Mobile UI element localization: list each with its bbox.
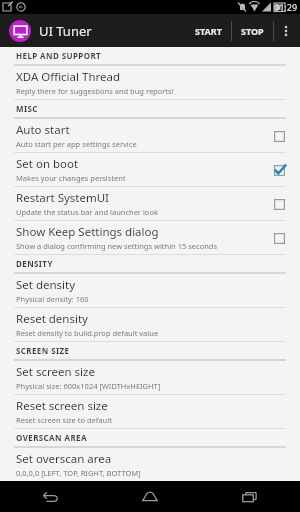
button[interactable]: STOP (232, 14, 273, 47)
button[interactable]: Unchecked (268, 193, 290, 215)
staticText: HELP AND SUPPORT (16, 50, 102, 61)
staticText: Reset density to build.prop default valu… (16, 328, 159, 338)
staticText: Set on boot (16, 156, 79, 172)
staticText: Set overscan area (16, 451, 112, 467)
staticText: XDA Official Thread (16, 69, 121, 85)
staticText: OVERSCAN AREA (16, 432, 87, 443)
staticText: 01:29 (274, 1, 298, 13)
button[interactable]: Show Keep Settings dialog (0, 221, 300, 254)
button[interactable]: START (186, 14, 231, 47)
button[interactable]: Auto start (0, 119, 300, 152)
button[interactable]: Recent apps (200, 481, 300, 512)
staticText: Auto start (16, 122, 70, 138)
staticText: STOP (241, 25, 264, 37)
staticText: START (195, 25, 222, 37)
staticText: Auto start per app settings service (16, 139, 137, 149)
button[interactable]: More options (274, 14, 298, 47)
button[interactable]: Reset screen size (0, 395, 300, 428)
staticText: Physical size: 600x1024 [WIDTHxHEIGHT] (16, 381, 161, 391)
button[interactable]: Set density (0, 274, 300, 307)
button[interactable]: Set overscan area (0, 448, 300, 481)
staticText: Reply there for suggestions and bug repo… (16, 86, 174, 96)
staticText: Restart SystemUI (16, 190, 110, 206)
staticText: Show Keep Settings dialog (16, 224, 159, 240)
button[interactable]: Checked (268, 159, 290, 181)
staticText: DENSITY (16, 258, 53, 269)
staticText: MISC (16, 103, 38, 114)
button[interactable]: Set screen size (0, 361, 300, 394)
staticText: Reset screen size to default (16, 415, 112, 425)
staticText: 0,0,0,0 [LEFT, TOP, RIGHT, BOTTOM] (16, 468, 141, 478)
button[interactable]: Reset density (0, 308, 300, 341)
staticText: SCREEN SIZE (16, 345, 70, 356)
staticText: Reset screen size (16, 398, 108, 414)
staticText: UI Tuner (39, 22, 92, 40)
staticText: Makes your changes persistent (16, 173, 126, 183)
staticText: Show a dialog confirming new settings wi… (16, 241, 218, 251)
button[interactable]: Set on boot (0, 153, 300, 186)
staticText: Set screen size (16, 364, 95, 380)
staticText: Set density (16, 277, 76, 293)
staticText: Reset density (16, 311, 88, 327)
button[interactable]: Unchecked (268, 125, 290, 147)
button[interactable]: Restart SystemUI (0, 187, 300, 220)
button[interactable]: XDA Official Thread (0, 66, 300, 99)
staticText: Physical density: 160 (16, 294, 89, 304)
button[interactable]: Back (0, 481, 100, 512)
button[interactable]: Home (100, 481, 200, 512)
staticText: Update the status bar and launcher look (16, 207, 158, 217)
button[interactable]: Unchecked (268, 227, 290, 249)
